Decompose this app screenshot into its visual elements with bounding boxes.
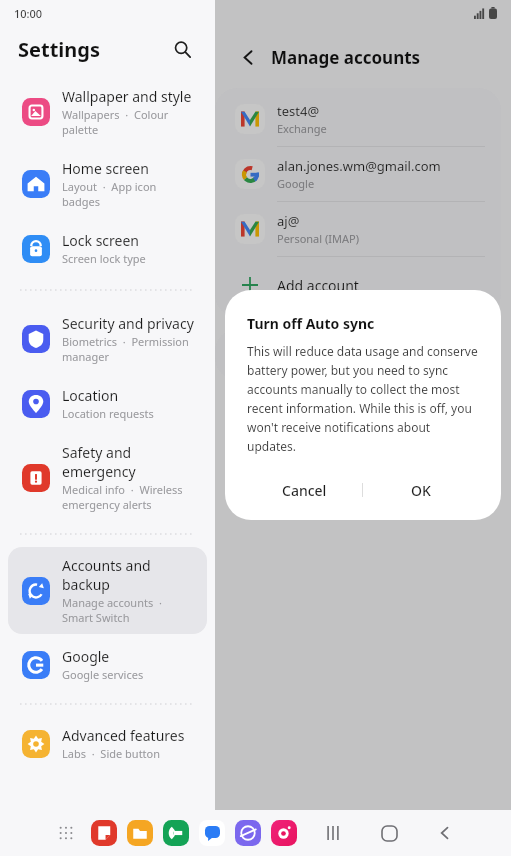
staticText: 10:00 bbox=[14, 6, 43, 21]
button[interactable]: App bbox=[124, 817, 156, 849]
staticText: OK bbox=[411, 481, 431, 500]
button[interactable]: Safety and emergency bbox=[8, 434, 207, 521]
button[interactable]: Location bbox=[8, 377, 207, 430]
button[interactable]: Security and privacy bbox=[8, 305, 207, 373]
button[interactable]: Apps bbox=[50, 817, 82, 849]
button[interactable]: Auto sync data bbox=[215, 329, 501, 380]
button[interactable]: alan.jones.wm@gmail.com bbox=[215, 147, 501, 201]
staticText: test4@ bbox=[277, 102, 320, 120]
button[interactable]: Google bbox=[8, 638, 207, 691]
staticText: Biometrics · Permission manager bbox=[62, 334, 197, 364]
button[interactable]: OK bbox=[363, 468, 479, 512]
staticText: Turn off Auto sync bbox=[247, 314, 375, 333]
staticText: Security and privacy bbox=[62, 314, 194, 333]
staticText: Personal (IMAP) bbox=[277, 231, 359, 246]
staticText: Add account bbox=[277, 276, 359, 295]
button[interactable]: Advanced features bbox=[8, 717, 207, 770]
button[interactable]: Search bbox=[167, 34, 197, 64]
button[interactable]: Wallpaper and style bbox=[8, 78, 207, 146]
staticText: Google bbox=[62, 647, 110, 666]
staticText: Labs · Side button bbox=[62, 746, 161, 761]
button[interactable]: App bbox=[232, 817, 264, 849]
staticText: Advanced features bbox=[62, 726, 185, 745]
button[interactable]: Lock screen bbox=[8, 222, 207, 275]
staticText: Medical info · Wireless emergency alerts bbox=[62, 482, 197, 512]
staticText: Home screen bbox=[62, 159, 149, 178]
button[interactable]: Recents bbox=[316, 816, 350, 850]
button[interactable]: aj@ bbox=[215, 202, 501, 256]
button[interactable]: Back bbox=[233, 42, 263, 72]
staticText: alan.jones.wm@gmail.com bbox=[277, 157, 441, 175]
staticText: Safety and emergency bbox=[62, 443, 197, 481]
button[interactable]: App bbox=[268, 817, 300, 849]
button[interactable]: Cancel bbox=[247, 468, 362, 512]
staticText: Wallpapers · Colour palette bbox=[62, 107, 197, 137]
staticText: Google services bbox=[62, 667, 144, 682]
staticText: Location requests bbox=[62, 406, 154, 421]
staticText: Layout · App icon badges bbox=[62, 179, 197, 209]
staticText: Accounts and backup bbox=[62, 556, 197, 594]
staticText: Screen lock type bbox=[62, 251, 146, 266]
staticText: Manage accounts · Smart Switch bbox=[62, 595, 197, 625]
button[interactable]: Accounts and backup bbox=[8, 547, 207, 634]
button[interactable]: App bbox=[88, 817, 120, 849]
staticText: Wallpaper and style bbox=[62, 87, 192, 106]
staticText: aj@ bbox=[277, 212, 300, 230]
button[interactable]: App bbox=[160, 817, 192, 849]
button[interactable]: App bbox=[196, 817, 228, 849]
staticText: Location bbox=[62, 386, 119, 405]
button[interactable]: Home bbox=[372, 816, 406, 850]
staticText: Manage accounts bbox=[271, 46, 421, 69]
button[interactable]: Home screen bbox=[8, 150, 207, 218]
staticText: Settings bbox=[18, 36, 167, 63]
staticText: Cancel bbox=[282, 481, 327, 500]
button[interactable]: Add account bbox=[215, 257, 501, 313]
staticText: Lock screen bbox=[62, 231, 140, 250]
button[interactable]: test4@ bbox=[215, 92, 501, 146]
staticText: Exchange bbox=[277, 121, 327, 136]
staticText: Google bbox=[277, 176, 315, 191]
staticText: Auto sync data bbox=[235, 345, 451, 364]
staticText: This will reduce data usage and conserve… bbox=[247, 343, 479, 454]
button[interactable]: Back bbox=[428, 816, 462, 850]
